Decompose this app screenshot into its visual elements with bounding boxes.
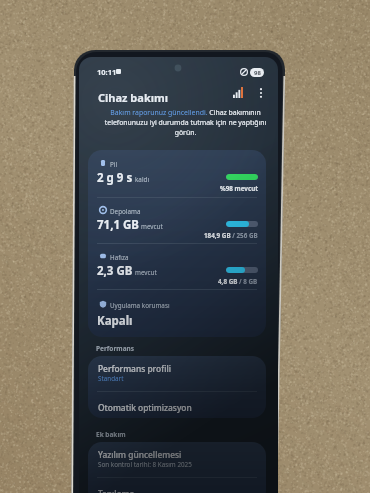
button[interactable]: Diğer seçenekler bbox=[252, 84, 269, 101]
staticText: Performans profili bbox=[98, 363, 171, 374]
button[interactable] bbox=[88, 393, 266, 425]
staticText: Ek bakım bbox=[96, 430, 126, 439]
button[interactable] bbox=[88, 245, 266, 290]
button[interactable] bbox=[88, 199, 266, 244]
staticText: 4,8 GB / 8 GB bbox=[218, 277, 258, 286]
staticText: Tanılama bbox=[98, 488, 135, 493]
staticText: 2,3 GB bbox=[97, 263, 133, 279]
staticText: Cihaz bakımı bbox=[98, 90, 169, 105]
button[interactable]: Bakım raporu bbox=[230, 84, 247, 101]
staticText: Depolama bbox=[110, 207, 141, 216]
staticText: Kapalı bbox=[97, 313, 133, 329]
staticText: Performans bbox=[96, 344, 135, 353]
staticText: Uygulama koruması bbox=[110, 301, 170, 310]
staticText: mevcut bbox=[135, 268, 157, 277]
staticText: Pil bbox=[110, 160, 118, 169]
button[interactable] bbox=[88, 152, 266, 197]
staticText: 2 g 9 s bbox=[97, 170, 133, 186]
button[interactable] bbox=[88, 479, 266, 493]
staticText: Standart bbox=[98, 374, 124, 383]
staticText: 71,1 GB bbox=[97, 217, 139, 233]
staticText: %98 mevcut bbox=[220, 184, 258, 193]
staticText: kaldı bbox=[135, 175, 150, 184]
button[interactable] bbox=[88, 444, 266, 476]
staticText: 98 bbox=[254, 69, 261, 77]
button[interactable] bbox=[88, 358, 266, 390]
staticText: Hafıza bbox=[110, 253, 129, 262]
button[interactable] bbox=[88, 291, 266, 337]
staticText: 10:11 bbox=[97, 67, 117, 77]
staticText: Otomatik optimizasyon bbox=[98, 402, 192, 413]
staticText: 184,9 GB / 256 GB bbox=[204, 231, 258, 240]
staticText: Bakım raporunuz güncellendi. Cihaz bakım… bbox=[97, 108, 274, 137]
staticText: mevcut bbox=[141, 222, 163, 231]
staticText: Son kontrol tarihi: 8 Kasım 2025 bbox=[98, 460, 192, 469]
staticText: Yazılım güncellemesi bbox=[98, 449, 182, 460]
